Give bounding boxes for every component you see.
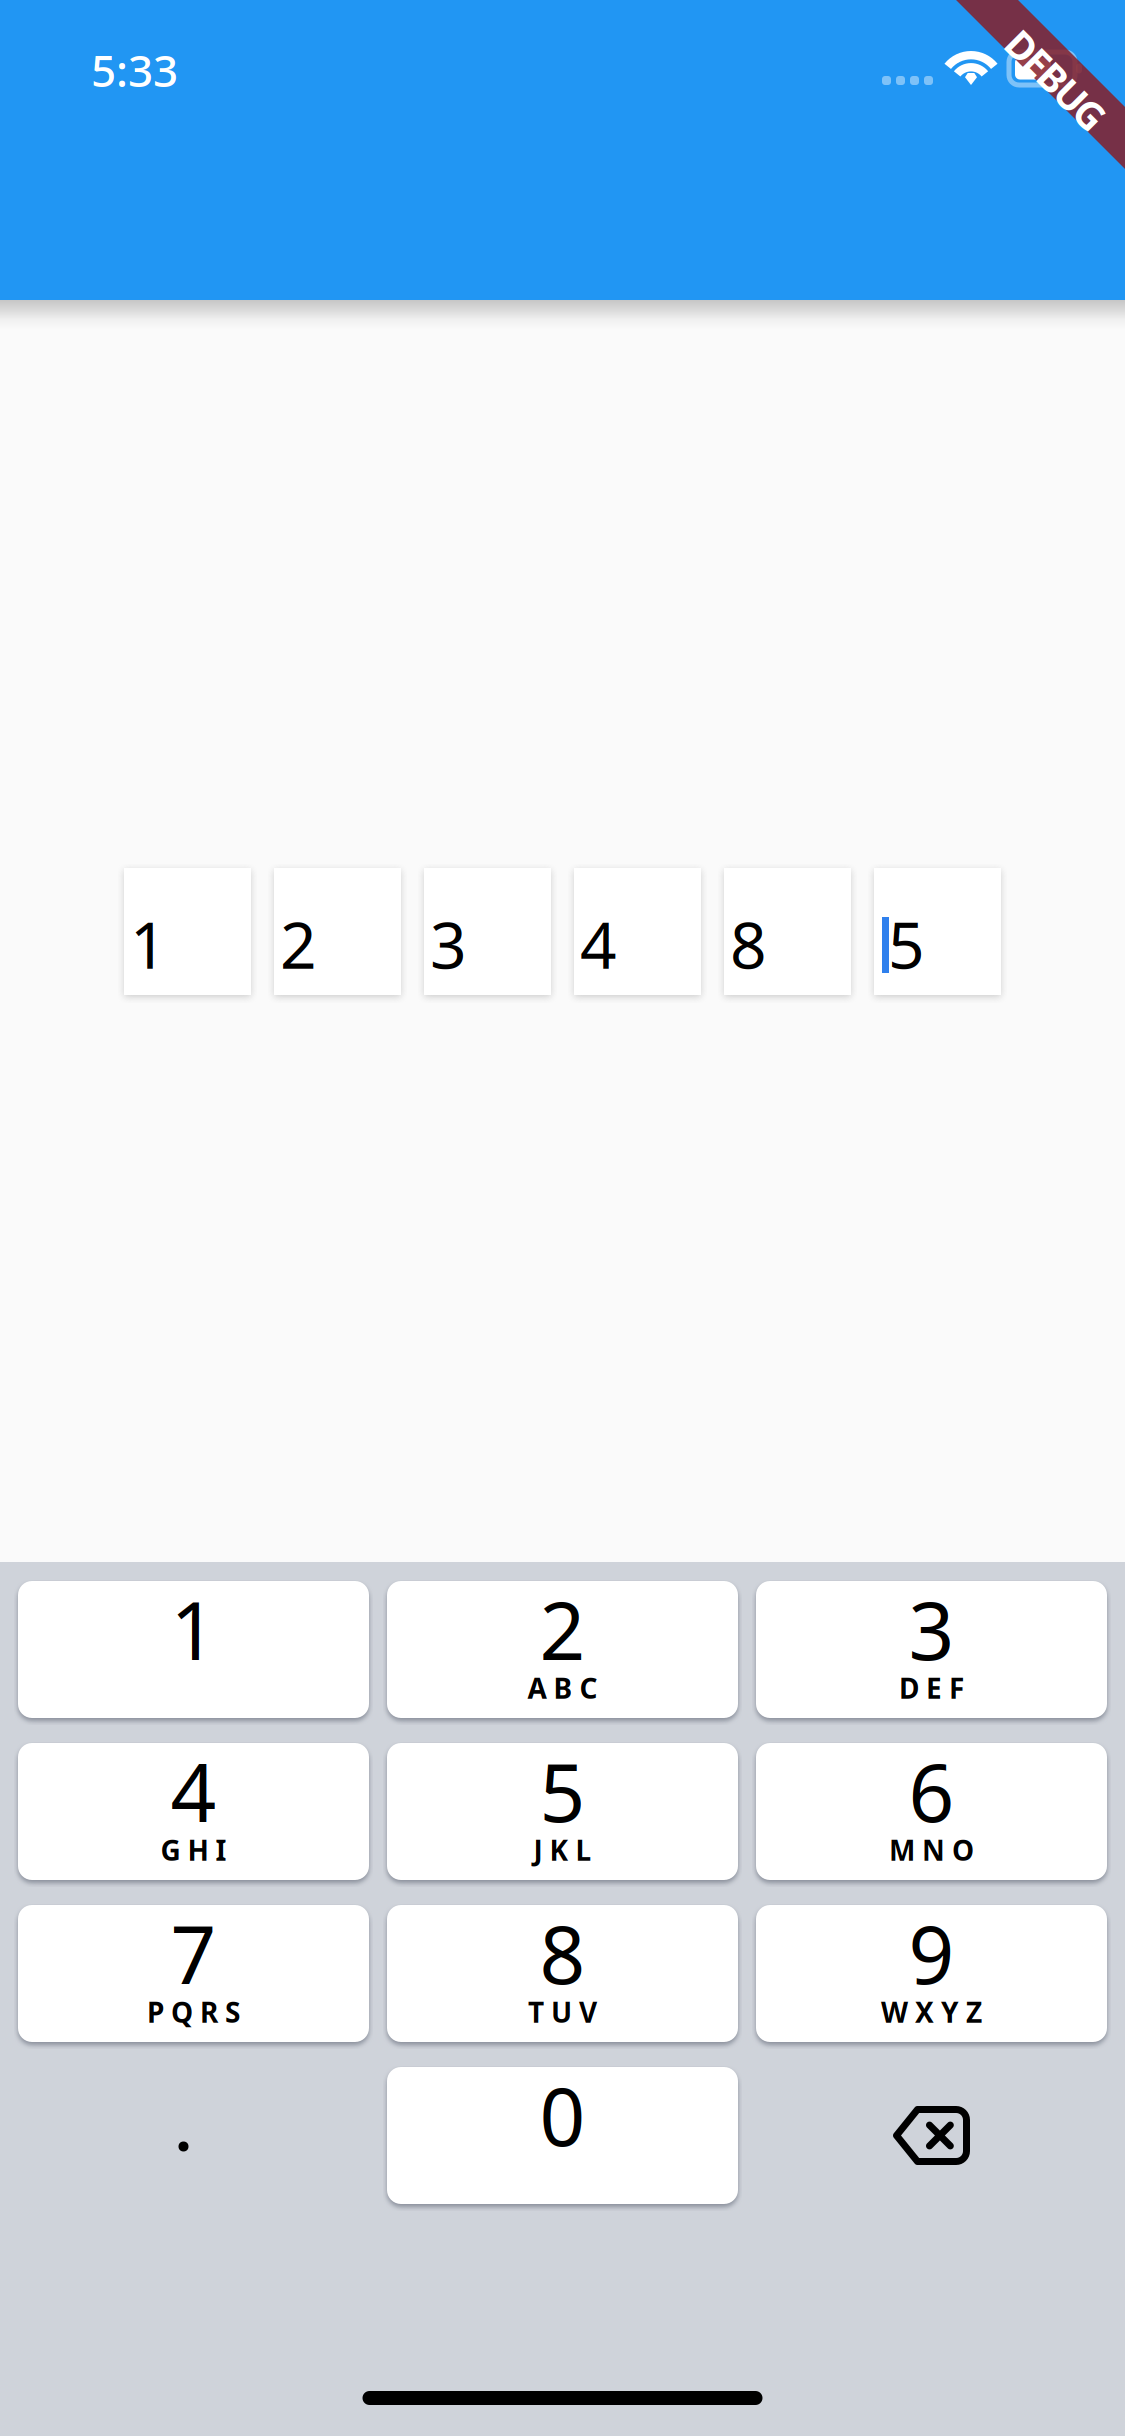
staticText: D E F [899,1669,964,1707]
staticText: 3 [430,901,467,986]
button[interactable]: 4 [574,868,701,995]
button[interactable]: 4 [18,1743,369,1880]
button[interactable]: 3 [756,1581,1107,1718]
button[interactable]: 5 [387,1743,738,1880]
button[interactable]: 9 [756,1905,1107,2042]
staticText: 0 [539,2062,585,2168]
staticText: 9 [908,1900,954,2006]
staticText: 8 [539,1900,585,2006]
staticText: M N O [889,1831,974,1869]
staticText: W X Y Z [881,1993,982,2031]
staticText: A B C [527,1669,597,1707]
staticText: J K L [533,1831,591,1869]
staticText: G H I [160,1831,226,1869]
button[interactable]: 1 [124,868,251,995]
button[interactable]: Delete [756,2067,1107,2204]
button[interactable]: Decimal point [18,2067,369,2204]
staticText: 4 [580,901,617,986]
button[interactable]: 2 [274,868,401,995]
button[interactable]: 6 [756,1743,1107,1880]
staticText: 8 [730,901,767,986]
button[interactable]: 8 [724,868,851,995]
staticText: 5 [539,1738,585,1844]
staticText: T U V [528,1993,597,2031]
button[interactable]: 7 [18,1905,369,2042]
staticText: 7 [170,1900,216,2006]
button[interactable]: 2 [387,1581,738,1718]
button[interactable]: 3 [424,868,551,995]
staticText: P Q R S [147,1993,240,2031]
staticText: 5:33 [91,41,178,99]
staticText: 3 [908,1576,954,1682]
button[interactable]: 0 [387,2067,738,2204]
staticText: 2 [539,1576,585,1682]
staticText: 1 [130,901,167,986]
staticText: 5 [888,901,925,986]
button[interactable]: 8 [387,1905,738,2042]
staticText: DEBUG [994,54,1118,106]
staticText: 2 [280,901,317,986]
staticText: 4 [170,1738,216,1844]
button[interactable]: 5 [874,868,1001,995]
staticText: 1 [170,1576,216,1682]
button[interactable]: 1 [18,1581,369,1718]
staticText: 6 [908,1738,954,1844]
